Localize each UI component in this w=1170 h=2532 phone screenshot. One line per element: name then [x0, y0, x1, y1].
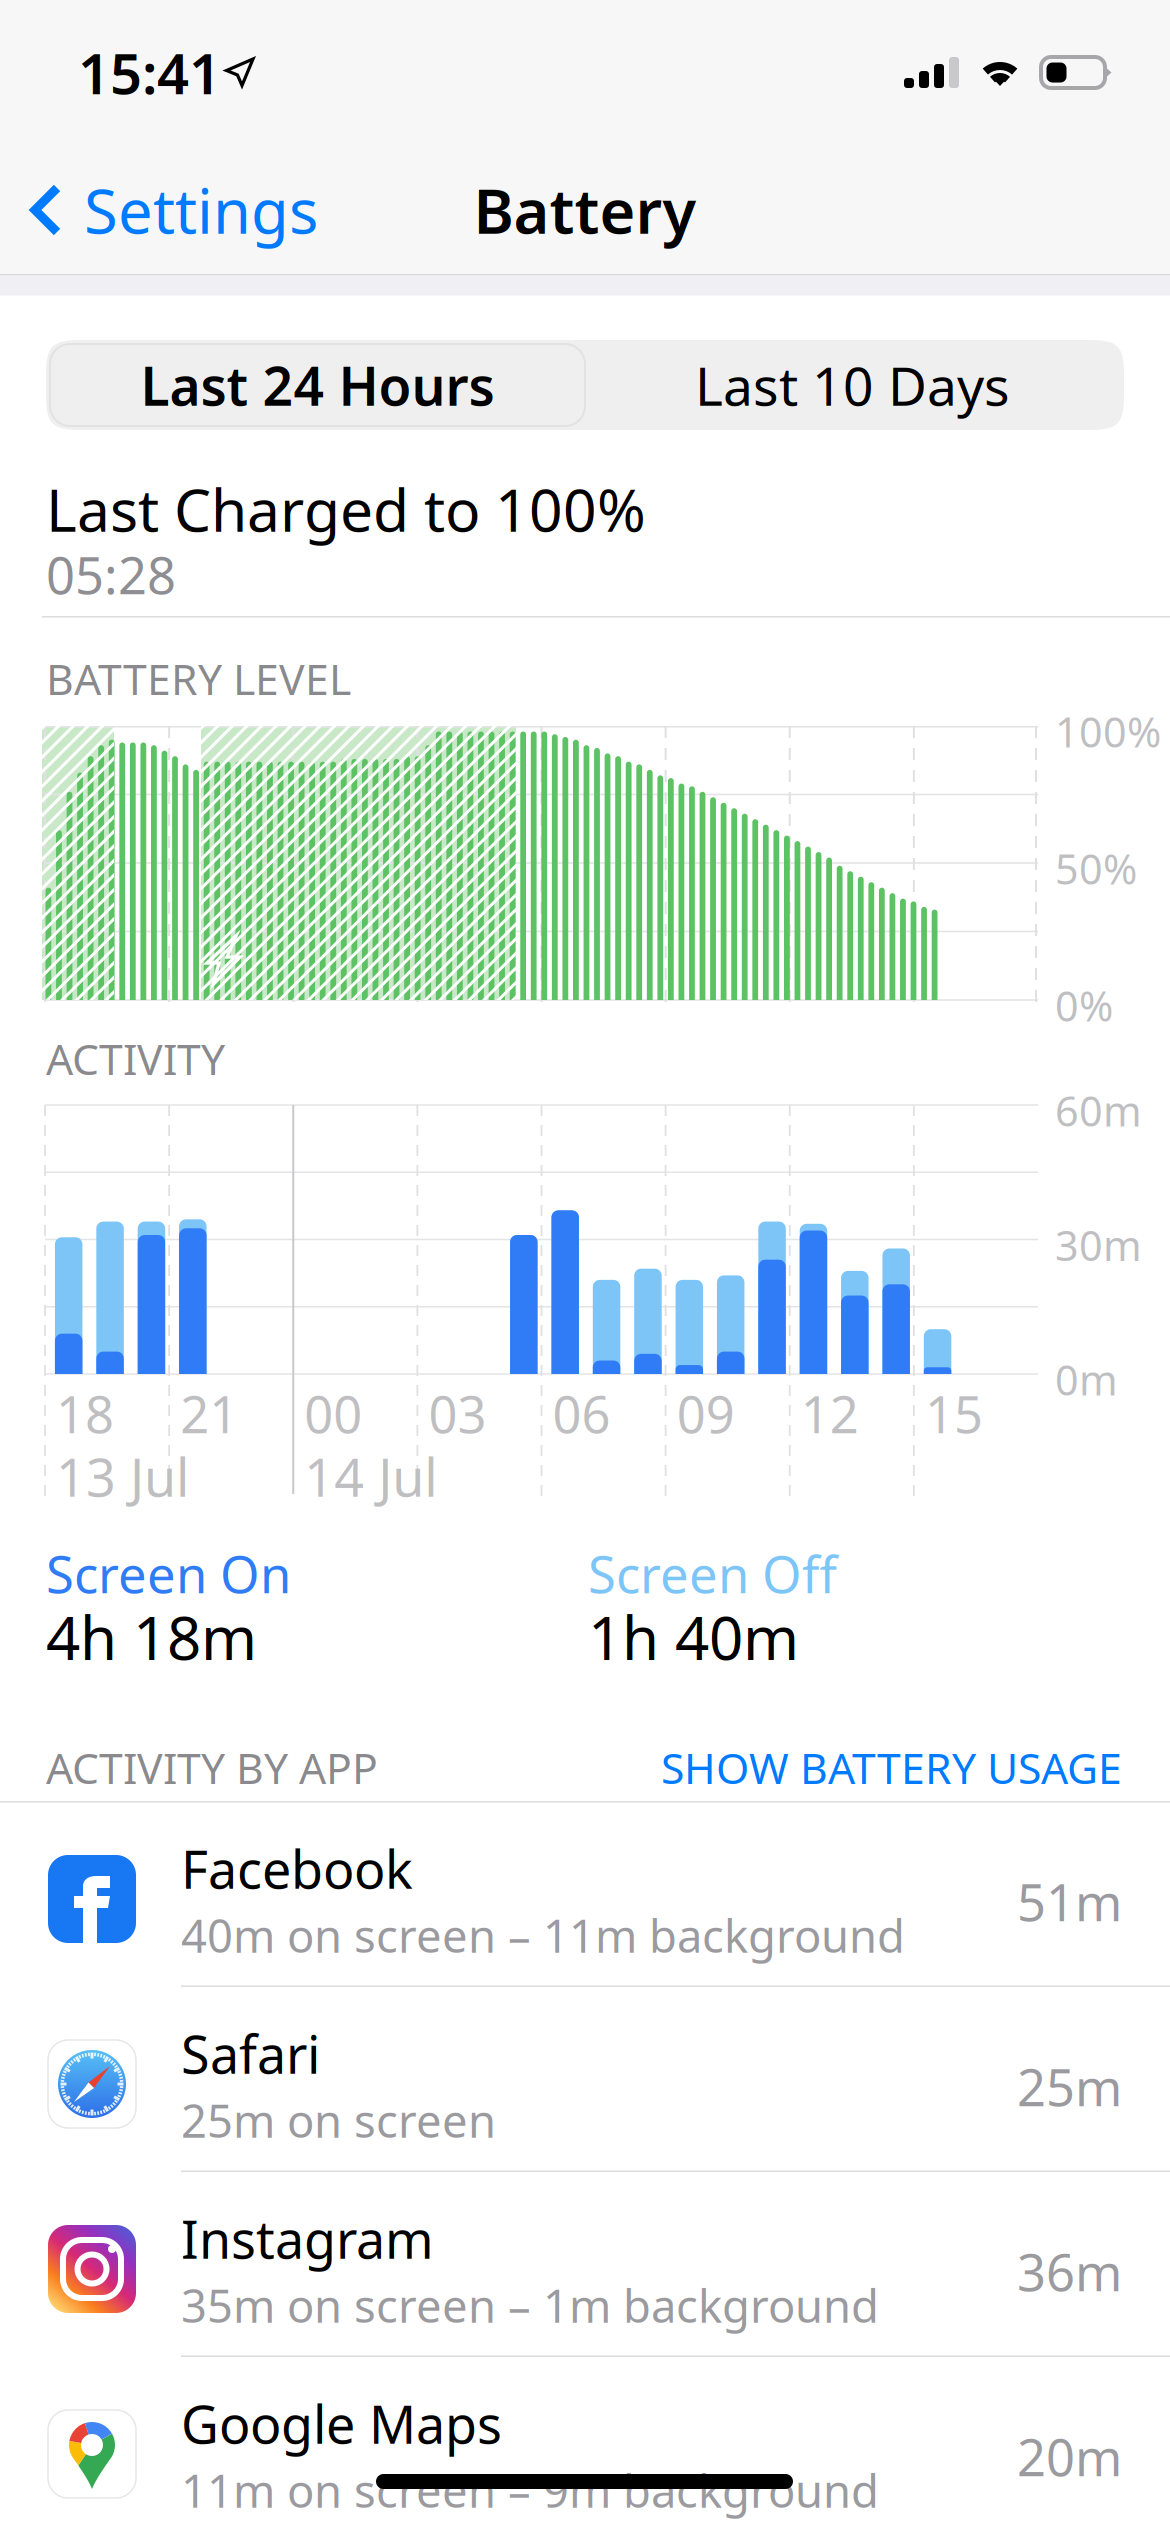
- staticText: 21: [180, 1380, 238, 1447]
- staticText: Last 24 Hours: [140, 350, 494, 420]
- staticText: 15: [925, 1380, 983, 1447]
- staticText: Safari: [181, 2019, 320, 2088]
- staticText: 12: [801, 1380, 859, 1447]
- staticText: 0%: [1055, 978, 1113, 1033]
- staticText: Facebook: [181, 1834, 413, 1903]
- staticText: 14 Jul: [304, 1442, 437, 1511]
- staticText: 25m: [1017, 2053, 1122, 2120]
- staticText: Screen On: [46, 1540, 291, 1607]
- staticText: Screen Off: [588, 1540, 837, 1607]
- staticText: 30m: [1055, 1217, 1142, 1272]
- staticText: 03: [428, 1380, 486, 1447]
- staticText: ACTIVITY BY APP: [46, 1739, 378, 1796]
- staticText: 05:28: [46, 541, 176, 608]
- staticText: Google Maps: [181, 2389, 502, 2458]
- staticText: ACTIVITY: [46, 1030, 225, 1087]
- staticText: 0m: [1055, 1352, 1118, 1407]
- staticText: Last Charged to 100%: [46, 470, 646, 548]
- staticText: 51m: [1017, 1868, 1122, 1935]
- staticText: Battery: [473, 169, 696, 251]
- staticText: 20m: [1017, 2423, 1122, 2490]
- staticText: SHOW BATTERY USAGE: [661, 1739, 1122, 1796]
- staticText: 40m on screen – 11m background: [181, 1905, 905, 1965]
- button[interactable]: Last 10 Days: [585, 344, 1120, 426]
- staticText: Last 10 Days: [695, 350, 1010, 420]
- button[interactable]: SHOW BATTERY USAGE: [661, 1739, 1170, 1796]
- staticText: 4h 18m: [46, 1597, 257, 1677]
- staticText: 100%: [1055, 704, 1161, 759]
- button[interactable]: Facebook: [0, 1802, 1170, 1987]
- staticText: 15:41: [78, 35, 221, 110]
- button[interactable]: Google Maps: [0, 2357, 1170, 2532]
- staticText: 25m on screen: [181, 2090, 496, 2150]
- staticText: Instagram: [181, 2204, 434, 2273]
- staticText: 50%: [1055, 841, 1137, 896]
- staticText: 60m: [1055, 1083, 1142, 1138]
- staticText: 13 Jul: [56, 1442, 189, 1511]
- staticText: Settings: [84, 169, 318, 251]
- staticText: 1h 40m: [588, 1597, 799, 1677]
- staticText: 11m on screen – 9m background: [181, 2460, 879, 2520]
- button[interactable]: Safari: [0, 1987, 1170, 2172]
- staticText: BATTERY LEVEL: [46, 650, 351, 707]
- button[interactable]: Settings: [0, 147, 342, 272]
- staticText: 18: [56, 1380, 114, 1447]
- button[interactable]: Last 24 Hours: [50, 344, 585, 426]
- staticText: 35m on screen – 1m background: [181, 2275, 879, 2335]
- staticText: 09: [677, 1380, 735, 1447]
- staticText: 06: [552, 1380, 610, 1447]
- staticText: 36m: [1017, 2238, 1122, 2305]
- staticText: 00: [304, 1380, 362, 1447]
- button[interactable]: Instagram: [0, 2172, 1170, 2357]
